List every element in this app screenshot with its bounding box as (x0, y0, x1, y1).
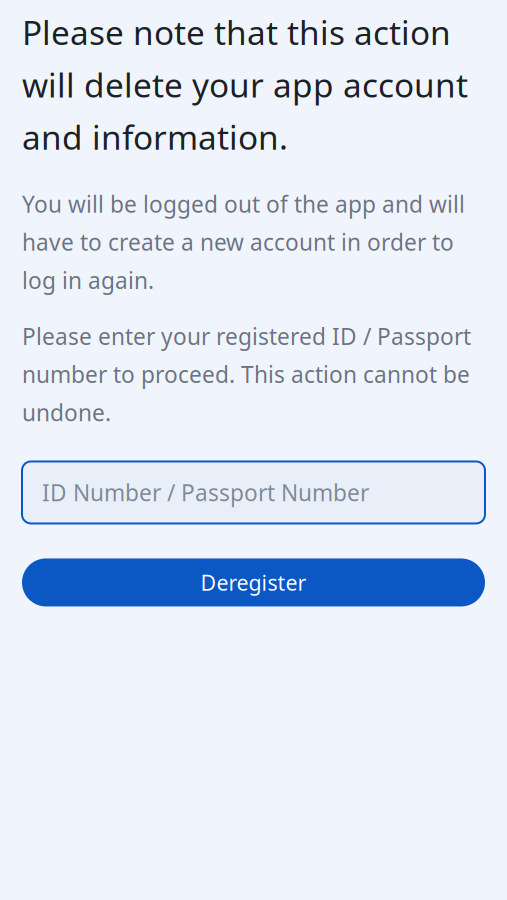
staticText: You will be logged out of the app and wi… (22, 189, 465, 295)
staticText: Deregister (200, 568, 306, 597)
button[interactable]: Deregister (22, 558, 485, 606)
staticText: Please enter your registered ID / Passpo… (22, 321, 471, 427)
button[interactable]: ID Number / Passport Number (22, 461, 485, 523)
staticText: Please note that this action will delete… (22, 10, 468, 159)
staticText: ID Number / Passport Number (42, 477, 369, 507)
